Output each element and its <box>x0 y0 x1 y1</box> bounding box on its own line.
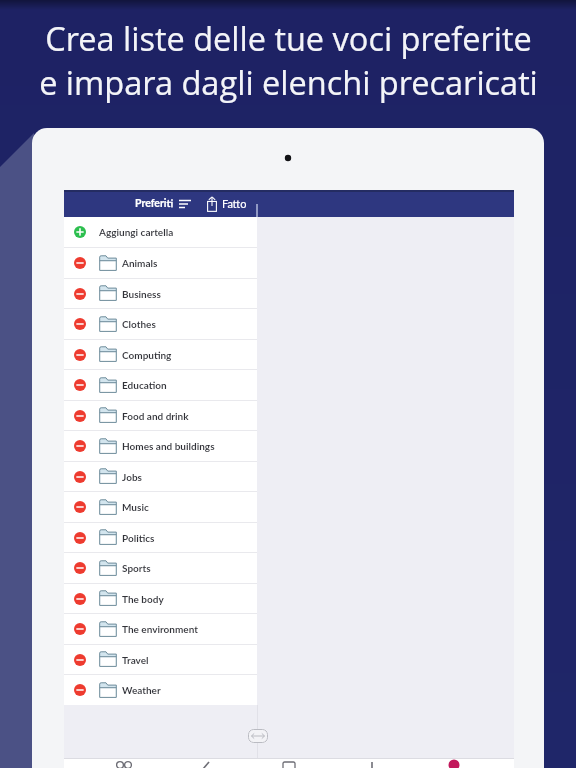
button[interactable]: Sports <box>64 553 257 583</box>
staticText: Animals <box>122 257 158 269</box>
button[interactable]: Computing <box>64 340 257 369</box>
button[interactable]: Resize panels <box>248 729 268 743</box>
button[interactable]: Tab 4 <box>349 759 395 768</box>
button[interactable]: Aggiungi cartella <box>64 217 257 247</box>
staticText: The environment <box>122 623 198 635</box>
button[interactable]: Tab 5 <box>431 759 477 768</box>
staticText: Travel <box>122 654 149 666</box>
staticText: Weather <box>122 684 161 696</box>
button[interactable]: Animals <box>64 248 257 278</box>
button[interactable]: Jobs <box>64 462 257 491</box>
staticText: Clothes <box>122 318 156 330</box>
button[interactable]: The body <box>64 584 257 613</box>
button[interactable]: Business <box>64 279 257 308</box>
button[interactable]: Politics <box>64 523 257 552</box>
button[interactable]: Music <box>64 492 257 522</box>
staticText: Crea liste delle tue voci preferite <box>45 16 532 60</box>
staticText: Education <box>122 379 167 391</box>
button[interactable]: Clothes <box>64 309 257 339</box>
button[interactable]: Homes and buildings <box>64 431 257 461</box>
staticText: The body <box>122 593 164 605</box>
staticText: e impara dagli elenchi precaricati <box>39 60 538 104</box>
staticText: Homes and buildings <box>122 440 215 452</box>
staticText: Business <box>122 288 161 300</box>
button[interactable]: Food and drink <box>64 401 257 430</box>
button[interactable]: Tab 3 <box>266 759 312 768</box>
button[interactable]: Fatto <box>222 197 247 210</box>
staticText: Music <box>122 501 149 513</box>
button[interactable]: Sort <box>179 198 191 210</box>
button[interactable]: Travel <box>64 645 257 674</box>
button[interactable]: Tab 1 <box>101 759 147 768</box>
staticText: Aggiungi cartella <box>99 226 174 238</box>
staticText: Politics <box>122 532 155 544</box>
button[interactable]: Share <box>207 196 217 212</box>
staticText: Food and drink <box>122 410 189 422</box>
button[interactable]: Tab 2 <box>183 759 229 768</box>
staticText: Computing <box>122 349 172 361</box>
staticText: Sports <box>122 562 151 574</box>
button[interactable]: Preferiti <box>135 197 174 210</box>
button[interactable]: Education <box>64 370 257 400</box>
button[interactable]: The environment <box>64 614 257 644</box>
staticText: Jobs <box>122 471 142 483</box>
button[interactable]: Weather <box>64 675 257 705</box>
